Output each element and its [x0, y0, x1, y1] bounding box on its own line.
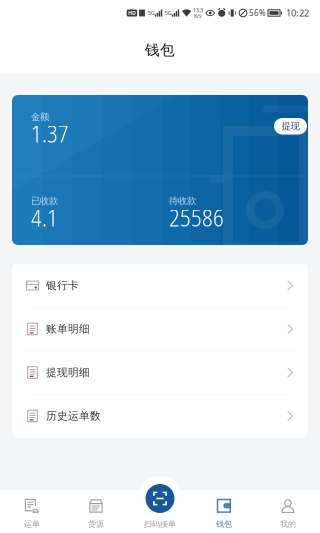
staticText: 钱包 — [216, 519, 232, 529]
staticText: 待收款 — [169, 195, 196, 207]
staticText: 钱包 — [145, 41, 175, 59]
staticText: 10:22 — [286, 7, 309, 19]
staticText: 提现明细 — [46, 366, 90, 379]
button[interactable]: 扫码接单 — [145, 484, 174, 513]
staticText: 1.37 — [31, 118, 69, 149]
staticText: 提现 — [281, 120, 299, 132]
button[interactable]: 账单明细 — [12, 307, 308, 350]
staticText: 我的 — [280, 519, 296, 529]
staticText: K/s — [194, 12, 202, 19]
button[interactable]: 银行卡 — [12, 264, 308, 307]
staticText: 账单明细 — [46, 322, 90, 335]
button[interactable]: 提现 — [274, 118, 307, 134]
button[interactable]: 钱包 — [192, 490, 256, 533]
staticText: 历史运单数 — [46, 409, 101, 422]
staticText: 已收款 — [31, 195, 58, 207]
button[interactable]: 扫码接单 — [128, 490, 192, 533]
staticText: 5G — [148, 9, 155, 17]
button[interactable]: 我的 — [256, 490, 320, 533]
staticText: 金额 — [31, 111, 49, 123]
staticText: 25586 — [169, 202, 224, 233]
staticText: 银行卡 — [46, 279, 79, 292]
staticText: 4.1 — [31, 202, 58, 233]
button[interactable]: 历史运单数 — [12, 394, 308, 437]
staticText: 5G — [165, 9, 172, 17]
button[interactable]: 提现明细 — [12, 351, 308, 394]
staticText: 扫码接单 — [144, 519, 176, 529]
staticText: 56% — [249, 8, 266, 18]
button[interactable]: 货源 — [64, 490, 128, 533]
staticText: 货源 — [88, 519, 104, 529]
staticText: HD — [128, 9, 136, 17]
staticText: 运单 — [24, 519, 40, 529]
staticText: 13.3 — [193, 7, 203, 14]
button[interactable]: 运单 — [0, 490, 64, 533]
